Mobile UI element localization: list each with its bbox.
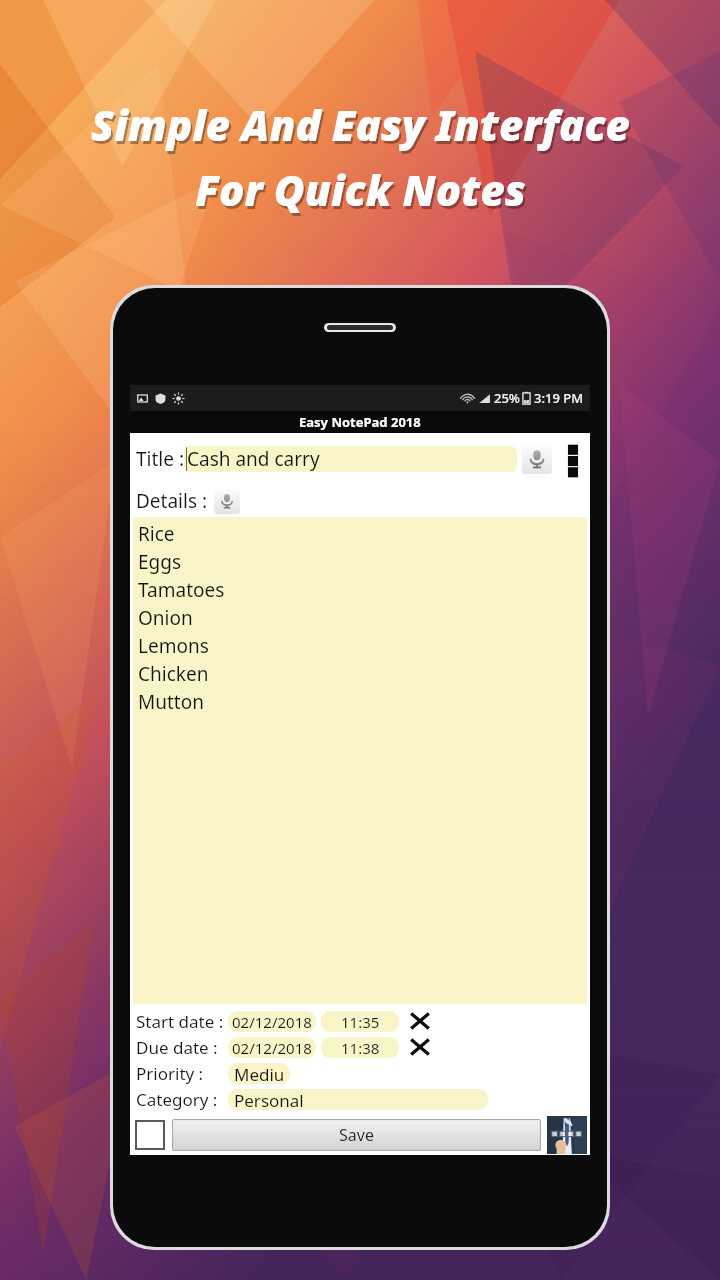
staticText: 25% <box>494 389 520 407</box>
button[interactable]: Personal <box>228 1089 488 1110</box>
button[interactable]: Voice input for title <box>522 444 552 474</box>
staticText: Chicken <box>138 661 209 687</box>
staticText: Details : <box>136 488 208 514</box>
staticText: Eggs <box>138 549 182 575</box>
staticText: Simple And Easy Interface <box>91 96 630 153</box>
button[interactable]: 11:38 <box>321 1037 399 1058</box>
button[interactable]: 02/12/2018 <box>228 1037 316 1058</box>
staticText: For Quick Notes <box>195 161 526 218</box>
button[interactable]: Attached photo <box>547 1116 587 1154</box>
staticText: Mutton <box>138 689 204 715</box>
staticText: Save <box>339 1124 374 1146</box>
staticText: Cash and carry <box>187 446 320 472</box>
staticText: Onion <box>138 605 193 631</box>
staticText: 02/12/2018 <box>232 1012 312 1032</box>
staticText: 3:19 PM <box>534 389 584 407</box>
button[interactable]: Medium <box>228 1063 290 1084</box>
staticText: For Quick Notes <box>197 164 528 221</box>
button[interactable]: Save <box>172 1119 541 1151</box>
staticText: 11:38 <box>341 1038 380 1058</box>
staticText: Personal <box>234 1089 304 1110</box>
staticText: Lemons <box>138 633 209 659</box>
staticText: Simple And Easy Interface <box>93 99 632 156</box>
button[interactable]: 11:35 <box>321 1011 399 1032</box>
staticText: Easy NotePad 2018 <box>299 413 421 431</box>
staticText: Title : <box>136 446 184 472</box>
staticText: Tamatoes <box>138 577 225 603</box>
staticText: Priority : <box>136 1062 204 1085</box>
button[interactable]: Voice input for details <box>214 488 240 514</box>
button[interactable]: Rice <box>133 517 587 1004</box>
staticText: Start date : <box>136 1010 224 1033</box>
staticText: Rice <box>138 521 175 547</box>
button[interactable]: Clear Start date : <box>407 1008 433 1034</box>
staticText: 02/12/2018 <box>232 1038 312 1058</box>
button[interactable]: Mark complete <box>135 1120 165 1150</box>
staticText: 11:35 <box>341 1012 380 1032</box>
button[interactable]: 02/12/2018 <box>228 1011 316 1032</box>
staticText: Category : <box>136 1088 218 1111</box>
button[interactable]: More options <box>562 442 584 476</box>
button[interactable]: Cash and carry <box>184 446 517 472</box>
button[interactable]: Clear Due date : <box>407 1034 433 1060</box>
staticText: Due date : <box>136 1036 218 1059</box>
staticText: Medium <box>234 1063 290 1084</box>
